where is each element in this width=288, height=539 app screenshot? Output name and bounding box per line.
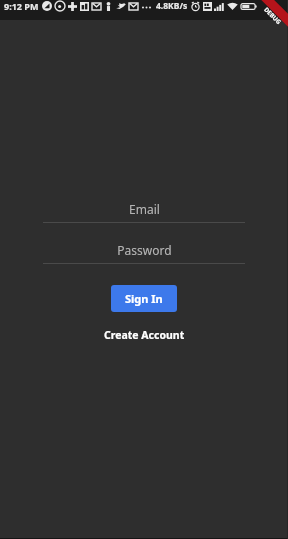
staticText: Create Account: [104, 328, 185, 342]
staticText: Sign In: [125, 291, 163, 306]
button[interactable]: Create Account: [96, 324, 193, 346]
button[interactable]: Sign In: [111, 285, 177, 312]
staticText: DEBUG: [262, 6, 283, 26]
staticText: 9:12 PM: [4, 0, 39, 12]
button[interactable]: Email: [43, 196, 245, 223]
staticText: Email: [129, 201, 160, 217]
staticText: 4.8KB/s: [156, 0, 188, 12]
staticText: Password: [117, 242, 172, 258]
button[interactable]: Password: [43, 237, 245, 264]
